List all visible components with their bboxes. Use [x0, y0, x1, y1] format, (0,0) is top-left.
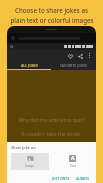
staticText: It couldn't take the strain. [21, 131, 82, 138]
staticText: Text [70, 164, 76, 168]
staticText: Choose to share jokes as [15, 6, 88, 14]
staticText: Image [25, 164, 35, 168]
button[interactable]: FAVORITE JOKES [51, 61, 96, 69]
staticText: JUST ONCE [52, 176, 70, 180]
button[interactable]: Share [75, 51, 85, 61]
button[interactable]: Favorite [65, 51, 75, 61]
staticText: Why did the anti-virus quit? [18, 116, 85, 123]
staticText: FAVORITE JOKES [60, 63, 87, 68]
button[interactable]: Image [11, 153, 49, 170]
button[interactable]: JUST ONCE [50, 175, 72, 181]
button[interactable]: More options [85, 51, 94, 60]
staticText: ALWAYS [76, 176, 90, 180]
staticText: plain text or colorful images [10, 16, 94, 24]
button[interactable]: ALWAYS [74, 175, 92, 181]
staticText: Share joke as: [11, 145, 37, 150]
staticText: ALL JOKES [21, 63, 38, 68]
button[interactable]: ALL JOKES [7, 61, 51, 69]
button[interactable]: A [53, 153, 92, 170]
staticText: A [71, 155, 75, 162]
